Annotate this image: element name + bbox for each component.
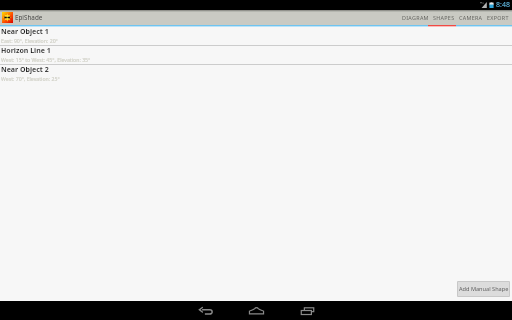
staticText: East: 90°, Elevation: 20° bbox=[1, 37, 58, 44]
button[interactable]: Home bbox=[231, 301, 282, 320]
button[interactable]: EXPORT bbox=[485, 10, 511, 25]
staticText: SHAPES bbox=[433, 14, 455, 21]
button[interactable]: Near Object 1 bbox=[0, 27, 512, 45]
button[interactable]: Recent apps bbox=[282, 301, 333, 320]
button[interactable]: CAMERA bbox=[457, 10, 485, 25]
button[interactable]: SHAPES bbox=[431, 10, 457, 25]
staticText: West: 15° to West: 45°, Elevation: 35° bbox=[1, 56, 91, 63]
staticText: 8:48 bbox=[496, 0, 510, 10]
button[interactable]: Near Object 2 bbox=[0, 65, 512, 83]
staticText: DIAGRAM bbox=[402, 14, 429, 21]
staticText: Near Object 2 bbox=[1, 65, 49, 75]
button[interactable]: DIAGRAM bbox=[400, 10, 431, 25]
button[interactable]: Back bbox=[180, 301, 231, 320]
staticText: West: 70°, Elevation: 25° bbox=[1, 75, 60, 82]
staticText: EpiShade bbox=[15, 13, 43, 22]
staticText: Add Manual Shape bbox=[459, 285, 509, 293]
staticText: Horizon Line 1 bbox=[1, 46, 51, 56]
button[interactable]: Add Manual Shape bbox=[458, 282, 509, 296]
button[interactable]: Horizon Line 1 bbox=[0, 46, 512, 64]
staticText: EXPORT bbox=[487, 14, 509, 21]
staticText: CAMERA bbox=[459, 14, 483, 21]
staticText: Near Object 1 bbox=[1, 27, 49, 37]
